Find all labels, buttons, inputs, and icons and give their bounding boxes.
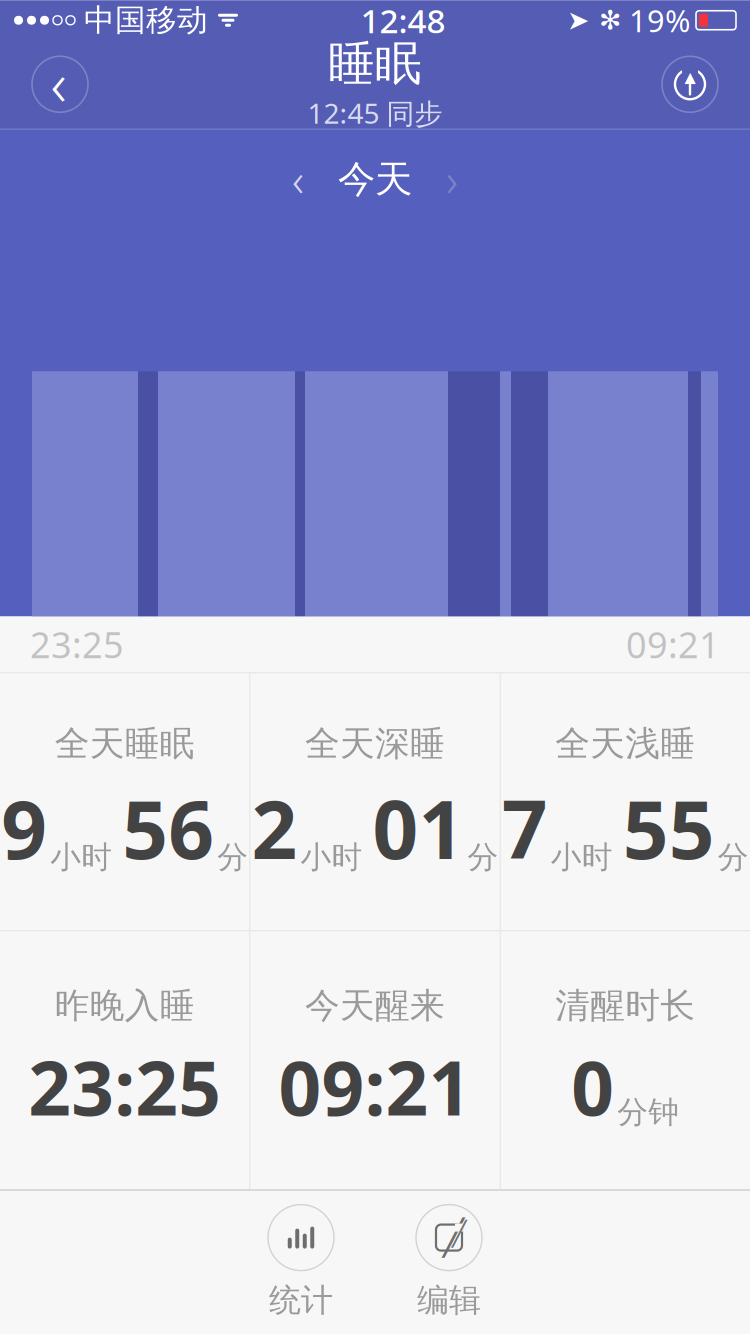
staticText: 全天深睡 bbox=[305, 722, 445, 765]
staticText: 55 bbox=[623, 775, 715, 881]
staticText: 今天 bbox=[338, 156, 412, 202]
staticText: 9 bbox=[1, 775, 47, 881]
staticText: 小时 bbox=[551, 838, 613, 876]
button[interactable]: 前一天 bbox=[274, 155, 322, 203]
staticText: 09:21 bbox=[626, 620, 720, 668]
staticText: ➤ bbox=[567, 5, 589, 35]
staticText: 小时 bbox=[300, 838, 362, 876]
staticText: 编辑 bbox=[417, 1281, 481, 1320]
staticText: 今天醒来 bbox=[305, 984, 445, 1027]
staticText: 分 bbox=[217, 838, 248, 876]
staticText: ✻ bbox=[599, 5, 621, 35]
staticText: 0 bbox=[571, 1037, 614, 1136]
button[interactable]: 返回 bbox=[22, 46, 98, 122]
staticText: 7 bbox=[502, 775, 548, 881]
staticText: 统计 bbox=[269, 1281, 333, 1320]
staticText: 小时 bbox=[50, 838, 112, 876]
button[interactable]: 统计 bbox=[250, 1199, 352, 1326]
staticText: 23:25 bbox=[30, 620, 124, 668]
staticText: ▲ bbox=[684, 69, 695, 85]
staticText: 23:25 bbox=[28, 1037, 221, 1136]
staticText: 56 bbox=[122, 775, 214, 881]
staticText: 2 bbox=[251, 775, 297, 881]
button[interactable]: 后一天 bbox=[428, 155, 476, 203]
staticText: ‹ bbox=[50, 41, 66, 123]
staticText: 全天睡眠 bbox=[55, 722, 195, 765]
staticText: ╱ bbox=[452, 1220, 466, 1247]
staticText: 12:48 bbox=[360, 0, 445, 42]
button[interactable]: 同步 bbox=[652, 46, 728, 122]
staticText: ╱ bbox=[443, 1218, 464, 1257]
staticText: 19% bbox=[629, 0, 690, 41]
staticText: 09:21 bbox=[278, 1037, 471, 1136]
staticText: 分 bbox=[718, 838, 749, 876]
staticText: 睡眠 bbox=[328, 35, 422, 92]
staticText: 全天浅睡 bbox=[555, 722, 695, 765]
staticText: 中国移动 bbox=[84, 1, 208, 39]
staticText: › bbox=[446, 149, 458, 209]
staticText: 01 bbox=[372, 775, 464, 881]
staticText: 分 bbox=[467, 838, 498, 876]
button[interactable]: ╱ bbox=[398, 1199, 500, 1326]
staticText: ‹ bbox=[292, 149, 304, 209]
staticText: 昨晚入睡 bbox=[55, 984, 195, 1027]
staticText: 清醒时长 bbox=[555, 984, 695, 1027]
staticText: 12:45 同步 bbox=[307, 94, 442, 131]
staticText: 分钟 bbox=[617, 1093, 679, 1131]
